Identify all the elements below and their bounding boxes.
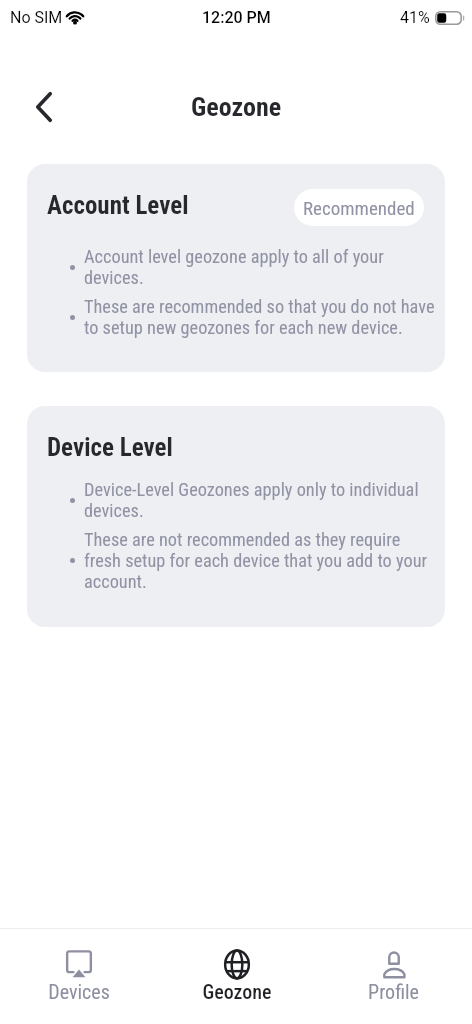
button[interactable]: Devices [0,929,158,1024]
staticText: These are not recommended as they requir… [84,529,428,592]
staticText: Recommended [303,197,415,219]
button[interactable]: Geozone [158,929,315,1024]
button[interactable]: Back [21,84,67,130]
button[interactable]: Profile [315,929,472,1024]
staticText: 12:20 PM [202,8,271,27]
staticText: No SIM [10,8,63,27]
button[interactable]: Account Level [27,164,445,372]
staticText: Account level geozone apply to all of yo… [84,246,384,288]
staticText: Devices [48,980,110,1003]
button[interactable]: Device Level [27,406,445,627]
staticText: These are recommended so that you do not… [84,296,435,338]
staticText: Device-Level Geozones apply only to indi… [84,479,419,521]
staticText: Device Level [47,433,173,462]
button[interactable]: Recommended [294,189,424,226]
staticText: 41% [400,8,430,27]
staticText: Geozone [191,92,282,122]
staticText: Profile [368,980,419,1003]
staticText: Geozone [202,980,272,1003]
staticText: Account Level [47,191,189,220]
